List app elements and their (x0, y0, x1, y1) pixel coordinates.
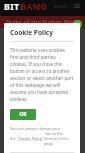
staticText: the (10, 136, 17, 141)
button[interactable]: Open menu (73, 2, 81, 10)
staticText: since 2003, offering a wide range of ser… (5, 138, 80, 153)
staticText: You can always change your preferences b… (10, 126, 74, 131)
staticText: Cookie Policy (10, 28, 53, 37)
button[interactable]: Play video (73, 20, 82, 29)
button[interactable]: "Cookie Policy" (17, 136, 44, 141)
button[interactable]: OK (10, 109, 36, 120)
button[interactable]: BIT (4, 0, 47, 12)
staticText: OK (19, 111, 27, 118)
staticText: link at the bottom of the page. (44, 131, 74, 146)
button[interactable]: MENU (52, 4, 70, 9)
staticText: This website uses cookies first and thir… (10, 47, 74, 102)
staticText: State of the Italian Web - (1) (6, 18, 85, 26)
staticText: BANG (20, 0, 47, 12)
staticText: BIT (4, 0, 20, 12)
